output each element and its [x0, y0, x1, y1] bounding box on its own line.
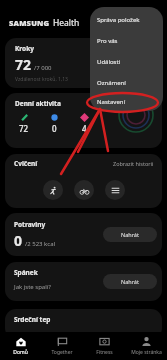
staticText: 72 — [15, 55, 32, 74]
staticText: Denní aktivita — [15, 99, 61, 108]
button[interactable]: Potraviny — [5, 213, 162, 256]
staticText: Fitness — [96, 349, 113, 356]
staticText: 0 — [14, 231, 23, 250]
staticText: Nastavení — [97, 98, 126, 106]
button[interactable]: Spánek — [5, 262, 162, 301]
button[interactable]: Další cvičení — [105, 180, 125, 200]
button[interactable]: Kroky — [5, 38, 162, 88]
button[interactable]: Moje stránka — [125, 334, 167, 358]
staticText: Oznámení — [97, 79, 126, 87]
staticText: Správa položek — [97, 16, 140, 24]
staticText: Domů — [13, 349, 28, 356]
staticText: /2 523 kcal — [25, 240, 56, 248]
staticText: Pro vás — [97, 37, 118, 45]
staticText: Together — [51, 349, 73, 356]
button[interactable]: Události — [90, 51, 163, 72]
staticText: Jak jste spali? — [14, 283, 51, 291]
staticText: Události — [97, 58, 121, 66]
button[interactable]: Správa položek — [90, 9, 163, 30]
button[interactable]: Cvičení — [5, 154, 162, 208]
button[interactable]: Fitness — [83, 334, 125, 358]
staticText: SAMSUNG — [9, 18, 50, 28]
button[interactable]: Pro vás — [90, 30, 163, 51]
button[interactable]: Jízda na kole — [74, 180, 94, 200]
staticText: Health — [53, 17, 80, 29]
staticText: Vzdálenost kroků, 1,13 — [15, 76, 68, 83]
button[interactable]: Oznámení — [90, 72, 163, 93]
button[interactable]: Denní aktivita — [5, 93, 162, 148]
staticText: Potraviny — [14, 220, 46, 229]
staticText: /7 000 — [34, 64, 52, 72]
button[interactable]: Nastavení — [90, 93, 163, 111]
staticText: 4 — [82, 123, 87, 134]
staticText: Nahrát — [121, 231, 139, 238]
staticText: Spánek — [14, 268, 38, 277]
staticText: 72 — [19, 123, 29, 134]
button[interactable]: Nahrát — [103, 227, 157, 242]
button[interactable]: Nahrát — [103, 274, 157, 289]
button[interactable]: Domů — [0, 335, 41, 358]
button[interactable]: Srdeční tep — [5, 309, 162, 339]
staticText: Zobrazit historii — [113, 160, 154, 167]
staticText: Srdeční tep — [14, 315, 51, 324]
button[interactable]: Zobrazit historii — [113, 160, 154, 167]
staticText: 0 — [52, 123, 57, 134]
staticText: Cvičení — [14, 159, 38, 168]
staticText: Kroky — [15, 44, 34, 53]
staticText: Moje stránka — [131, 349, 162, 356]
button[interactable]: Together — [41, 334, 83, 358]
staticText: Nahrát — [121, 278, 139, 285]
button[interactable]: Běh — [43, 180, 63, 200]
